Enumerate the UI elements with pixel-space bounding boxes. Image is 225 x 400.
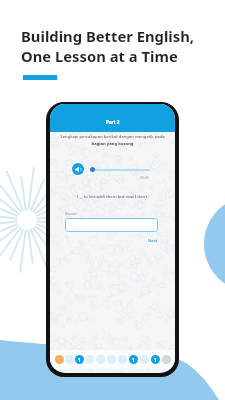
staticText: 00:05 xyxy=(140,175,149,180)
button[interactable] xyxy=(162,355,171,364)
staticText: Building Better English, xyxy=(21,26,195,46)
staticText: Lengkapi percakapan berikut dengan menge… xyxy=(60,134,165,146)
staticText: One Lesson at a Time xyxy=(21,46,178,66)
staticText: 1 xyxy=(132,357,135,363)
staticText: 1 xyxy=(154,357,157,363)
button[interactable] xyxy=(96,355,105,364)
button[interactable]: 1 xyxy=(151,355,160,364)
button[interactable]: Next xyxy=(148,238,158,244)
staticText: I __ to live with them but now I don't. xyxy=(60,194,165,200)
button[interactable] xyxy=(65,218,158,232)
button[interactable]: 1 xyxy=(75,355,84,364)
button[interactable]: Play audio xyxy=(72,163,84,175)
button[interactable] xyxy=(107,355,116,364)
button[interactable] xyxy=(85,355,94,364)
button[interactable] xyxy=(140,355,149,364)
staticText: 1 xyxy=(78,357,81,363)
staticText: Answer: xyxy=(65,211,78,216)
button[interactable] xyxy=(55,355,64,364)
button[interactable]: 1 xyxy=(129,355,138,364)
button[interactable] xyxy=(118,355,127,364)
button[interactable] xyxy=(65,355,74,364)
staticText: Part 2 xyxy=(106,119,120,125)
